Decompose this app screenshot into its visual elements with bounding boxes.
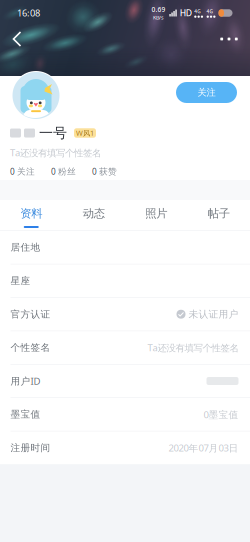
- staticText: 资料: [20, 206, 42, 220]
- button[interactable]: 0: [92, 166, 117, 177]
- button[interactable]: 0: [10, 166, 35, 177]
- button[interactable]: 星座: [0, 264, 250, 298]
- button[interactable]: 居住地: [0, 231, 250, 264]
- button[interactable]: Back: [4, 26, 30, 52]
- staticText: 关注: [197, 87, 215, 98]
- staticText: 0.69: [151, 5, 165, 14]
- staticText: Ta还没有填写个性签名: [147, 341, 238, 354]
- staticText: 未认证用户: [188, 308, 238, 320]
- button[interactable]: 0: [51, 166, 76, 177]
- staticText: 0: [51, 166, 56, 177]
- staticText: W风1: [76, 128, 94, 138]
- staticText: 一号: [39, 124, 67, 142]
- staticText: 星座: [10, 275, 30, 287]
- staticText: 获赞: [99, 166, 117, 177]
- staticText: 0: [92, 166, 97, 177]
- staticText: Ta还没有填写个性签名: [10, 146, 101, 159]
- button[interactable]: More options: [215, 26, 243, 52]
- staticText: 墨宝值: [10, 408, 40, 420]
- staticText: 4G: [194, 8, 200, 15]
- staticText: 16:08: [17, 7, 40, 19]
- staticText: 0: [10, 166, 15, 177]
- button[interactable]: 墨宝值: [0, 398, 250, 431]
- button[interactable]: 注册时间: [0, 431, 250, 464]
- staticText: 0墨宝值: [203, 408, 238, 421]
- staticText: 居住地: [10, 241, 40, 253]
- staticText: 个性签名: [10, 342, 50, 354]
- button[interactable]: 关注: [176, 82, 237, 103]
- staticText: 官方认证: [10, 308, 50, 320]
- button[interactable]: 资料: [0, 200, 62, 231]
- staticText: 关注: [17, 166, 35, 177]
- staticText: 用户ID: [10, 374, 40, 388]
- button[interactable]: 帖子: [187, 200, 250, 231]
- staticText: 粉丝: [58, 166, 76, 177]
- staticText: HD: [180, 7, 192, 19]
- button[interactable]: 用户ID: [0, 365, 250, 398]
- staticText: 帖子: [208, 206, 230, 220]
- staticText: 照片: [145, 206, 167, 220]
- staticText: 2020年07月03日: [168, 441, 238, 454]
- button[interactable]: 官方认证: [0, 298, 250, 331]
- staticText: KB/s: [153, 14, 164, 21]
- button[interactable]: 动态: [62, 200, 125, 231]
- staticText: 注册时间: [10, 442, 50, 454]
- staticText: 4G: [207, 8, 213, 15]
- button[interactable]: 照片: [125, 200, 187, 231]
- button[interactable]: 个性签名: [0, 331, 250, 365]
- staticText: 动态: [83, 206, 105, 220]
